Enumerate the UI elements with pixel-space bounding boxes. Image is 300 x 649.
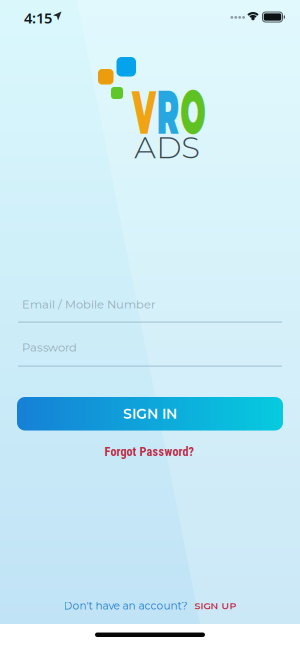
- staticText: Forgot Password?: [104, 444, 193, 459]
- button[interactable]: Don't have an account?: [63, 599, 236, 612]
- button[interactable]: Forgot Password?: [104, 444, 193, 459]
- staticText: R: [182, 74, 228, 149]
- staticText: SIGN IN: [123, 405, 177, 422]
- staticText: Don't have an account?: [63, 599, 187, 612]
- button[interactable]: SIGN IN: [17, 397, 283, 430]
- staticText: Password: [22, 340, 77, 354]
- button[interactable]: Password: [18, 339, 282, 367]
- staticText: 4:15: [24, 8, 52, 27]
- staticText: Email / Mobile Number: [22, 297, 156, 311]
- staticText: V: [132, 74, 180, 149]
- staticText: ADS: [134, 129, 200, 166]
- button[interactable]: Email / Mobile Number: [18, 296, 282, 323]
- staticText: SIGN UP: [194, 600, 236, 612]
